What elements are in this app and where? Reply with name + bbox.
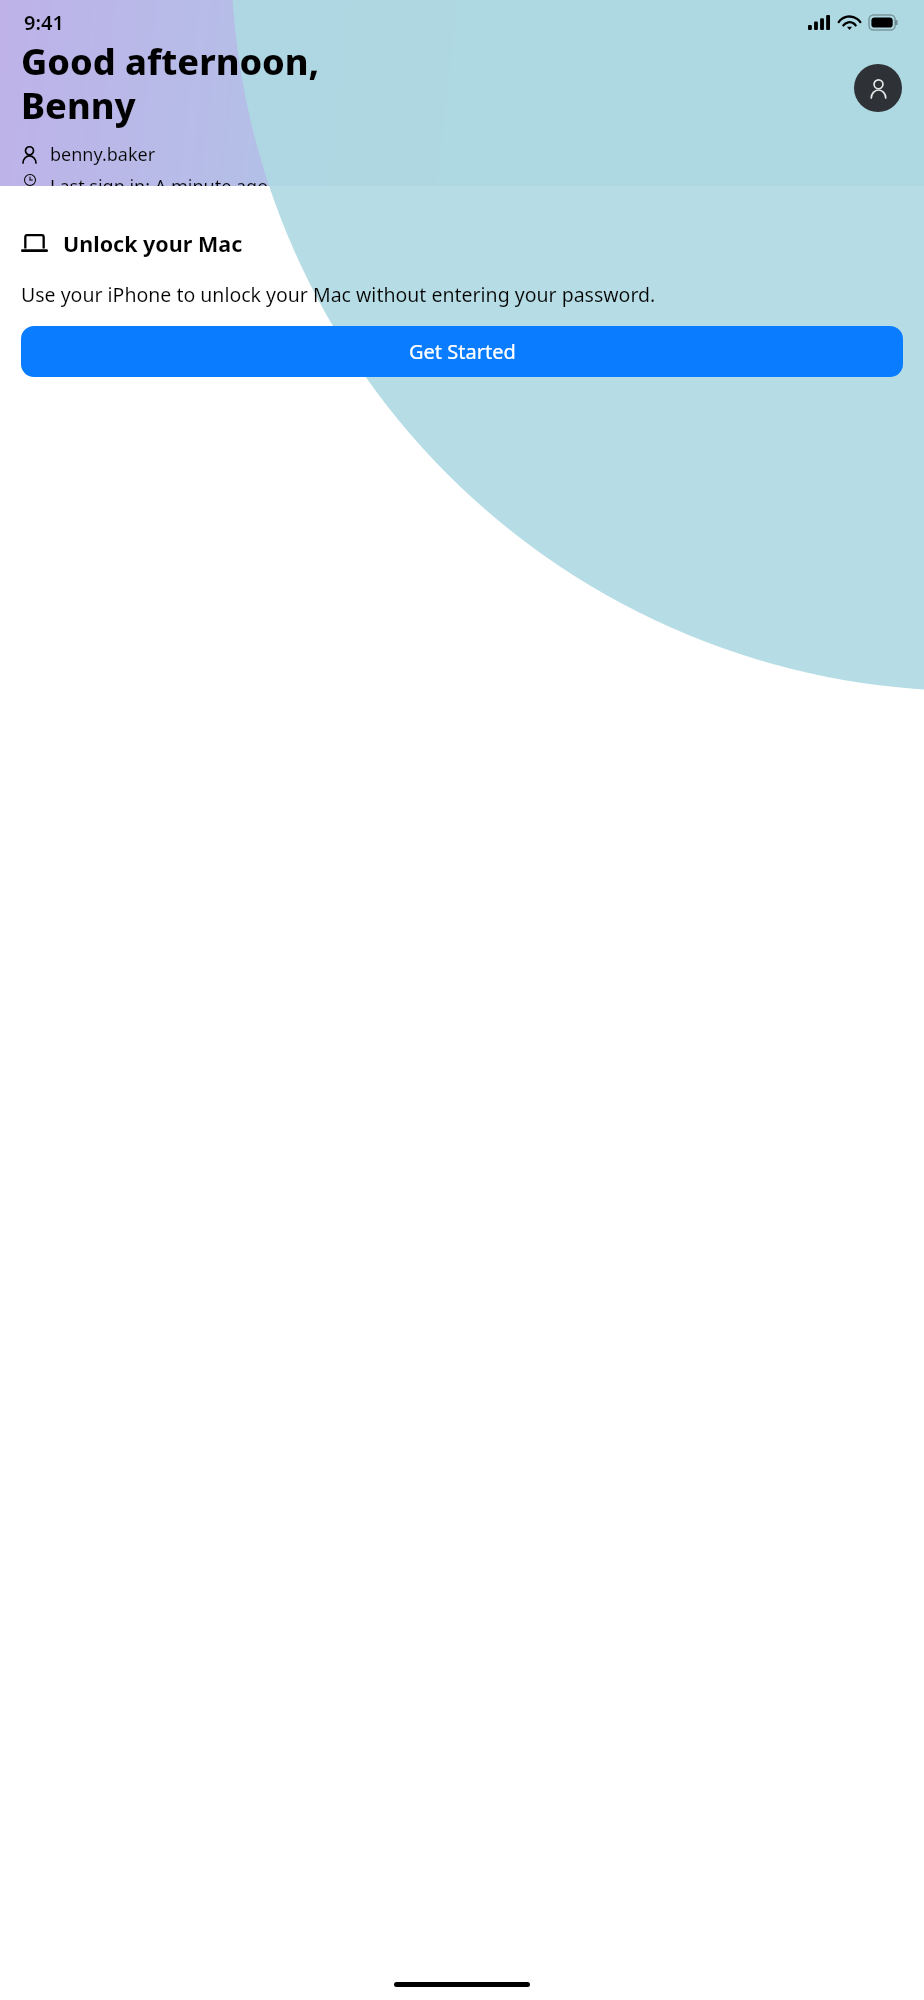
staticText: 9:41 <box>24 9 64 36</box>
button[interactable]: Get Started <box>21 326 903 377</box>
button[interactable]: Profile <box>854 64 902 112</box>
staticText: Get Started <box>409 338 516 365</box>
staticText: Use your iPhone to unlock your Mac witho… <box>21 281 656 308</box>
staticText: Last sign in: A minute ago <box>50 174 269 186</box>
staticText: Good afternoon, Benny <box>21 37 320 129</box>
staticText: Unlock your Mac <box>63 229 243 258</box>
staticText: benny.baker <box>50 142 156 167</box>
